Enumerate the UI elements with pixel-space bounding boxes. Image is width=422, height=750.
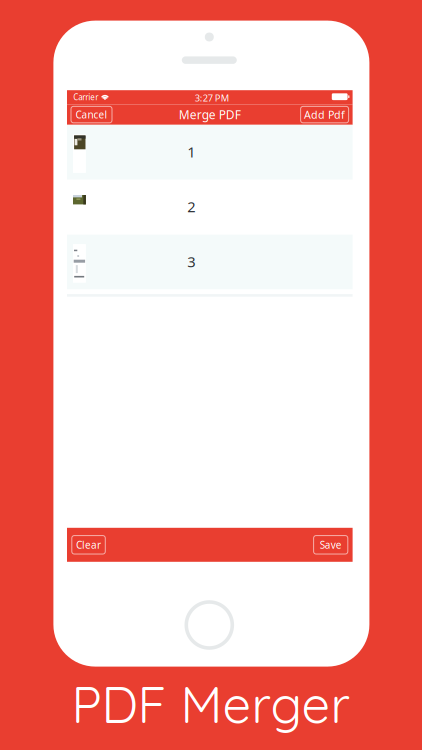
button[interactable]: Clear	[72, 536, 105, 554]
button[interactable]: Add Pdf	[301, 106, 349, 123]
staticText: Merge PDF	[179, 106, 241, 123]
staticText: Carrier	[73, 92, 98, 103]
staticText: 1	[187, 142, 195, 162]
button[interactable]: 3	[67, 235, 353, 289]
button[interactable]: Cancel	[71, 106, 112, 123]
staticText: Clear	[76, 538, 101, 552]
button[interactable]: 1	[67, 125, 353, 180]
staticText: Save	[320, 538, 342, 552]
staticText: Cancel	[75, 108, 107, 121]
button[interactable]: 2	[67, 180, 353, 235]
staticText: 3	[187, 252, 195, 272]
staticText: Add Pdf	[304, 107, 345, 122]
staticText: 2	[187, 197, 195, 217]
staticText: PDF Merger	[71, 672, 350, 736]
staticText: 3:27 PM	[195, 91, 229, 104]
button[interactable]: Save	[314, 536, 348, 554]
